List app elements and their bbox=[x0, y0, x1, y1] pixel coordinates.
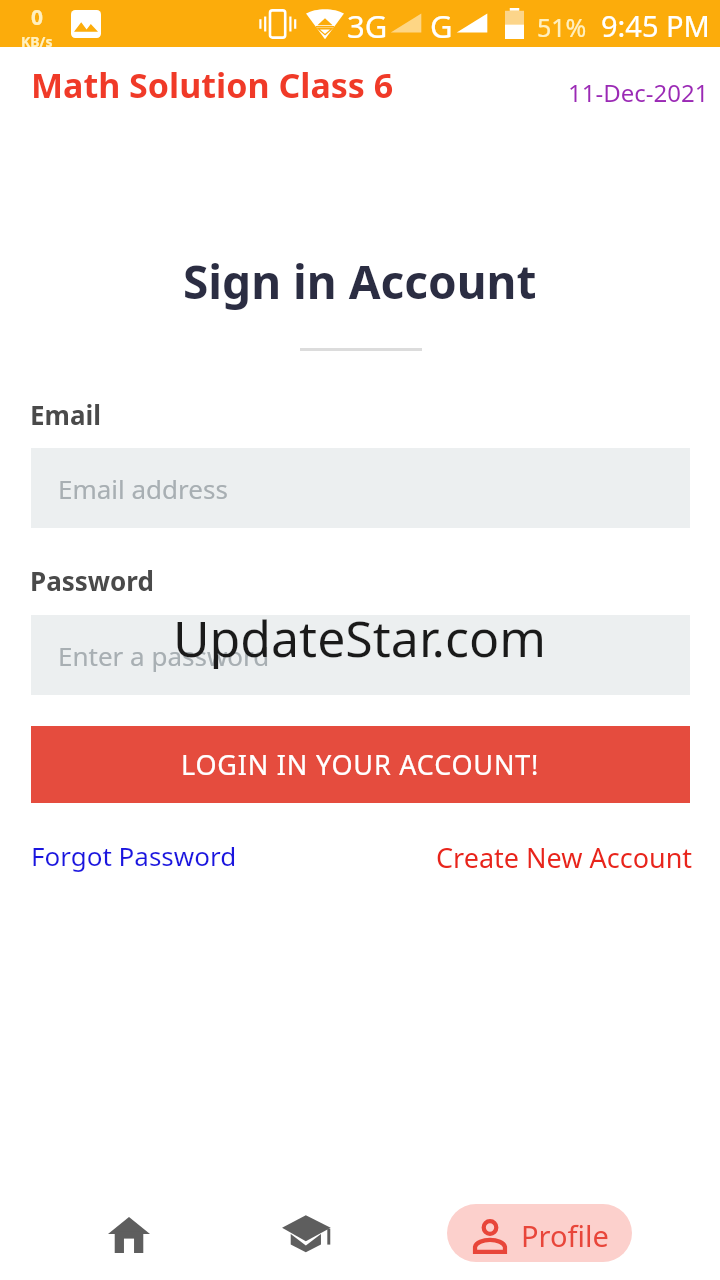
staticText: Math Solution Class 6 bbox=[31, 62, 394, 108]
staticText: 51% bbox=[537, 10, 587, 44]
button[interactable]: Create New Account bbox=[426, 829, 703, 886]
staticText: Create New Account bbox=[436, 839, 693, 876]
button[interactable]: Profile bbox=[447, 1204, 632, 1262]
button[interactable]: Email address bbox=[31, 448, 690, 528]
staticText: Password bbox=[30, 563, 154, 598]
staticText: KB/s bbox=[21, 32, 53, 50]
staticText: Email bbox=[30, 397, 102, 432]
staticText: 9:45 PM bbox=[601, 6, 710, 45]
staticText: G bbox=[430, 5, 453, 47]
staticText: Enter a password bbox=[58, 638, 270, 673]
staticText: 3G bbox=[347, 5, 388, 47]
staticText: Sign in Account bbox=[183, 250, 537, 313]
button[interactable]: LOGIN IN YOUR ACCOUNT! bbox=[31, 726, 690, 803]
staticText: Forgot Password bbox=[31, 838, 237, 873]
staticText: UpdateStar.com bbox=[173, 604, 546, 672]
button[interactable]: Courses bbox=[258, 1184, 358, 1280]
staticText: Profile bbox=[521, 1216, 609, 1255]
button[interactable]: Forgot Password bbox=[21, 828, 247, 883]
staticText: LOGIN IN YOUR ACCOUNT! bbox=[181, 746, 540, 783]
button[interactable]: Enter a password bbox=[31, 615, 690, 695]
staticText: Email address bbox=[58, 471, 228, 506]
button[interactable]: Home bbox=[79, 1187, 179, 1280]
staticText: 0 bbox=[31, 3, 44, 32]
staticText: 11-Dec-2021 bbox=[568, 76, 709, 109]
